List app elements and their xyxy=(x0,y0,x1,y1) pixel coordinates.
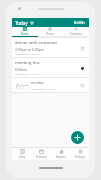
button[interactable]: Remove from favorites xyxy=(78,64,86,72)
button[interactable]: Diary xyxy=(12,148,32,160)
staticText: 2020-May-01 18:12:33 xyxy=(15,52,40,55)
staticText: Favorites xyxy=(70,32,82,36)
button[interactable]: Add to favorites xyxy=(78,44,86,52)
staticText: 2020-May-01 10:11:05 xyxy=(31,87,56,90)
button[interactable]: Settings xyxy=(70,148,89,160)
staticText: Settings xyxy=(75,155,85,159)
button[interactable]: Add new entry xyxy=(71,131,84,144)
staticText: Planning xyxy=(36,155,47,159)
button[interactable]: meeting fmc xyxy=(12,58,89,77)
button[interactable]: Reports xyxy=(51,148,70,160)
button[interactable]: Notes xyxy=(12,27,37,36)
staticText: dinner with customer xyxy=(15,40,58,46)
staticText: Notes xyxy=(21,32,29,36)
staticText: no idea xyxy=(31,80,44,85)
staticText: 2:00pm to 6:00pm xyxy=(15,47,45,52)
staticText: Diary xyxy=(19,155,26,159)
button[interactable]: Planning xyxy=(32,148,51,160)
staticText: meeting fmc xyxy=(15,60,40,66)
staticText: 2020-May-01 10:11:25 xyxy=(15,72,40,75)
button[interactable]: Filter xyxy=(30,21,34,25)
button[interactable]: Times xyxy=(37,27,63,36)
staticText: Times xyxy=(46,32,54,36)
staticText: 8:00am xyxy=(15,67,27,72)
button[interactable]: Add to favorites xyxy=(78,81,86,89)
button[interactable]: Favorites xyxy=(63,27,89,36)
staticText: Today xyxy=(15,20,28,26)
staticText: Reports xyxy=(56,155,66,159)
button[interactable]: dinner with customer xyxy=(12,38,89,57)
button[interactable]: no idea xyxy=(12,78,89,92)
button[interactable]: 8:05h xyxy=(73,19,86,27)
staticText: 8:05h xyxy=(74,20,85,26)
